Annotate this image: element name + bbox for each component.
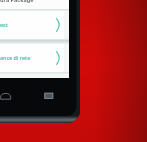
staticText: ance di rete [0, 54, 55, 61]
button[interactable]: ance di rete [0, 44, 64, 72]
button[interactable]: est [0, 11, 64, 39]
button[interactable]: Recents [43, 91, 54, 101]
staticText: ura Package [0, 0, 34, 4]
button[interactable]: Home [0, 90, 13, 102]
button[interactable]: ura Package [0, 0, 69, 9]
staticText: est [0, 21, 55, 28]
